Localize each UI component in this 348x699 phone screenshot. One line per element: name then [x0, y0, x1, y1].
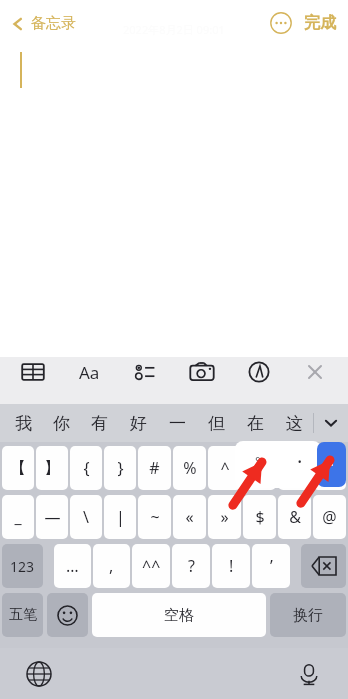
staticText: | — [116, 506, 125, 528]
staticText: ^^ — [142, 555, 161, 577]
button[interactable]: Close — [300, 357, 330, 387]
staticText: — — [44, 506, 61, 528]
button[interactable]: « — [173, 495, 206, 539]
button[interactable]: 】 — [36, 446, 68, 490]
button[interactable]: , — [93, 544, 130, 588]
button[interactable]: @ — [313, 495, 346, 539]
button[interactable]: ~ — [138, 495, 171, 539]
staticText: , — [109, 555, 114, 577]
button[interactable]: & — [278, 495, 311, 539]
button[interactable]: # — [138, 446, 171, 490]
button[interactable]: Voice input — [296, 661, 322, 687]
staticText: 一 — [169, 413, 186, 434]
button[interactable]: \ — [70, 495, 102, 539]
button[interactable]: 【 — [2, 446, 34, 490]
button[interactable]: 五笔 — [2, 593, 43, 637]
button[interactable]: 我 — [4, 404, 42, 442]
button[interactable]: ^^ — [132, 544, 170, 588]
button[interactable]: ! — [212, 544, 250, 588]
button[interactable]: 好 — [119, 404, 158, 442]
button[interactable]: 换行 — [270, 593, 346, 637]
staticText: 但 — [208, 413, 225, 434]
button[interactable]: Collapse — [314, 404, 348, 442]
button[interactable]: Text format — [74, 357, 104, 387]
staticText: _ — [14, 506, 22, 528]
button[interactable]: » — [208, 495, 241, 539]
staticText: ? — [188, 555, 195, 577]
staticText: 空格 — [164, 606, 194, 625]
staticText: 完成 — [304, 13, 336, 33]
button[interactable]: _ — [2, 495, 34, 539]
button[interactable]: Change keyboard — [26, 661, 52, 687]
button[interactable]: ? — [172, 544, 210, 588]
staticText: · — [297, 448, 303, 475]
button[interactable]: 123 — [2, 544, 43, 588]
button[interactable]: } — [104, 446, 136, 490]
staticText: \ — [83, 506, 89, 528]
staticText: 我 — [15, 413, 32, 434]
staticText: 这 — [286, 413, 303, 434]
staticText: ° — [255, 452, 261, 470]
button[interactable]: · — [278, 446, 311, 490]
button[interactable]: 在 — [236, 404, 275, 442]
staticText: & — [254, 457, 266, 479]
staticText: # — [149, 457, 160, 479]
staticText: » — [220, 506, 229, 528]
button[interactable]: 这 — [275, 404, 314, 442]
button[interactable]: 完成 — [302, 9, 338, 37]
button[interactable]: & — [243, 446, 276, 490]
button[interactable]: ’ — [252, 544, 290, 588]
staticText: 】 — [44, 458, 60, 478]
button[interactable]: Emoji — [47, 593, 88, 637]
staticText: … — [66, 555, 79, 577]
button[interactable]: — — [36, 495, 68, 539]
button[interactable]: Camera — [187, 357, 217, 387]
staticText: ! — [229, 555, 234, 577]
staticText: 在 — [247, 413, 264, 434]
staticText: 【 — [10, 458, 26, 478]
button[interactable]: % — [173, 446, 206, 490]
staticText: 换行 — [293, 606, 323, 625]
button[interactable]: 你 — [42, 404, 80, 442]
staticText: 五笔 — [9, 606, 37, 624]
button[interactable]: | — [104, 495, 136, 539]
button[interactable]: $ — [243, 495, 276, 539]
staticText: 好 — [130, 413, 147, 434]
button[interactable]: Table — [18, 357, 48, 387]
button[interactable]: 但 — [197, 404, 236, 442]
staticText: ~ — [150, 506, 160, 528]
button[interactable]: ^ — [208, 446, 241, 490]
button[interactable]: 有 — [80, 404, 119, 442]
staticText: 有 — [91, 413, 108, 434]
staticText: % — [183, 457, 197, 479]
button[interactable]: Checklist — [131, 357, 161, 387]
button[interactable]: … — [54, 544, 91, 588]
staticText: ^ — [220, 457, 230, 479]
button[interactable]: 一 — [158, 404, 197, 442]
staticText: · — [329, 451, 335, 478]
button[interactable]: 备忘录 — [6, 10, 80, 37]
staticText: 、 — [322, 458, 338, 478]
staticText: Aa — [79, 361, 100, 384]
button[interactable]: 、 — [313, 446, 346, 490]
button[interactable]: Markup — [244, 357, 274, 387]
staticText: 123 — [10, 557, 35, 576]
staticText: ’ — [270, 555, 273, 577]
button[interactable]: 空格 — [92, 593, 266, 637]
staticText: $ — [255, 506, 265, 528]
staticText: @ — [322, 506, 337, 528]
button[interactable]: More options — [270, 12, 292, 34]
staticText: & — [289, 506, 301, 528]
button[interactable]: Backspace — [301, 544, 346, 588]
staticText: 备忘录 — [31, 14, 76, 33]
button[interactable]: { — [70, 446, 102, 490]
staticText: } — [117, 457, 124, 479]
staticText: { — [83, 457, 90, 479]
staticText: « — [185, 506, 194, 528]
staticText: 你 — [53, 413, 70, 434]
